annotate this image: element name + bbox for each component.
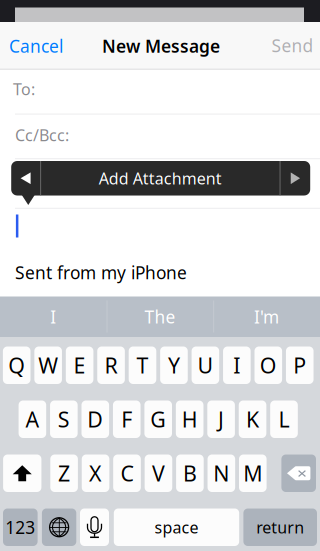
button[interactable]: V [145, 454, 172, 492]
staticText: D [87, 405, 103, 433]
staticText: To: [13, 78, 35, 100]
staticText: O [260, 351, 277, 379]
button[interactable]: space [114, 508, 239, 546]
button[interactable]: Y [160, 346, 188, 384]
staticText: M [243, 459, 262, 487]
button[interactable]: To: [0, 67, 303, 111]
button[interactable]: D [81, 400, 109, 438]
button[interactable]: I [0, 296, 107, 337]
staticText: F [121, 405, 132, 433]
button[interactable]: L [270, 400, 298, 438]
button[interactable]: I [223, 346, 251, 384]
staticText: Q [8, 351, 25, 379]
staticText: K [246, 405, 259, 433]
staticText: I [233, 351, 240, 379]
button[interactable]: Cc/Bcc: [0, 113, 305, 157]
staticText: New Message [102, 34, 220, 57]
staticText: H [182, 405, 198, 433]
button[interactable]: B [176, 454, 204, 492]
staticText: 123 [5, 516, 35, 539]
staticText: P [293, 351, 306, 379]
staticText: U [197, 351, 213, 379]
button[interactable]: K [239, 400, 266, 438]
button[interactable]: S [50, 400, 78, 438]
button[interactable]: O [254, 346, 282, 384]
button[interactable]: F [113, 400, 140, 438]
button[interactable]: Delete [281, 454, 316, 492]
staticText: J [218, 405, 224, 433]
button[interactable]: Next [280, 161, 310, 195]
button[interactable]: G [144, 400, 172, 438]
staticText: Send [271, 34, 313, 57]
button[interactable]: I'm [213, 296, 320, 337]
button[interactable]: Dictate [80, 508, 109, 546]
button[interactable]: E [66, 346, 93, 384]
button[interactable]: Send [243, 23, 320, 67]
staticText: space [154, 517, 198, 538]
button[interactable]: J [207, 400, 235, 438]
staticText: A [25, 405, 39, 433]
staticText: Y [168, 351, 180, 379]
button[interactable]: H [176, 400, 203, 438]
staticText: B [183, 459, 197, 487]
staticText: L [278, 405, 289, 433]
button[interactable]: Next keyboard [42, 508, 76, 546]
button[interactable]: R [97, 346, 125, 384]
staticText: R [104, 351, 117, 379]
button[interactable]: Add Attachment [41, 161, 280, 195]
staticText: Cancel [9, 34, 63, 57]
button[interactable]: Previous [11, 161, 40, 195]
staticText: Z [58, 459, 70, 487]
button[interactable]: P [286, 346, 313, 384]
button[interactable]: A [19, 400, 46, 438]
button[interactable]: C [113, 454, 141, 492]
button[interactable]: W [34, 346, 62, 384]
staticText: Add Attachment [99, 168, 222, 189]
button[interactable]: return [243, 508, 317, 546]
staticText: Sent from my iPhone [15, 261, 187, 284]
button[interactable]: 123 [3, 508, 38, 546]
staticText: X [89, 459, 102, 487]
button[interactable]: Cancel [0, 24, 89, 68]
staticText: W [38, 351, 58, 379]
staticText: S [58, 405, 70, 433]
button[interactable]: T [129, 346, 156, 384]
staticText: return [256, 517, 304, 538]
staticText: The [144, 305, 175, 328]
staticText: Cc/Bcc: [15, 124, 69, 146]
staticText: I [50, 305, 56, 328]
staticText: T [136, 351, 148, 379]
staticText: G [150, 405, 166, 433]
button[interactable]: Q [3, 346, 30, 384]
button[interactable]: M [239, 454, 267, 492]
staticText: I'm [254, 305, 279, 328]
staticText: C [120, 459, 133, 487]
button[interactable]: N [208, 454, 235, 492]
staticText: V [152, 459, 165, 487]
button[interactable]: The [107, 296, 213, 337]
staticText: E [74, 351, 86, 379]
button[interactable]: Z [50, 454, 78, 492]
button[interactable]: Shift [3, 454, 41, 492]
button[interactable]: U [192, 346, 219, 384]
staticText: N [213, 459, 229, 487]
button[interactable]: X [82, 454, 109, 492]
